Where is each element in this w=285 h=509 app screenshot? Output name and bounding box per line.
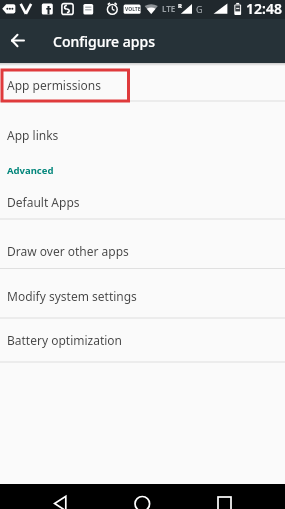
- staticText: Draw over other apps: [7, 243, 129, 259]
- button[interactable]: [205, 486, 245, 509]
- button[interactable]: Modify system settings: [0, 269, 285, 318]
- staticText: App links: [7, 127, 59, 143]
- button[interactable]: [122, 486, 162, 509]
- staticText: Modify system settings: [7, 288, 137, 304]
- staticText: G: [196, 3, 203, 15]
- staticText: LTE: [162, 3, 176, 14]
- staticText: Advanced: [7, 164, 54, 177]
- staticText: R: [178, 2, 182, 10]
- staticText: Default Apps: [7, 194, 80, 210]
- staticText: Configure apps: [53, 32, 155, 51]
- button[interactable]: Battery optimization: [0, 319, 285, 363]
- button[interactable]: App links: [0, 102, 285, 152]
- staticText: Battery optimization: [7, 332, 123, 348]
- button[interactable]: [40, 486, 80, 509]
- button[interactable]: App permissions: [0, 63, 285, 101]
- button[interactable]: Draw over other apps: [0, 220, 285, 269]
- staticText: 12:48: [246, 0, 282, 18]
- button[interactable]: Default Apps: [0, 181, 285, 219]
- staticText: VOLTE: [125, 6, 141, 13]
- staticText: App permissions: [7, 77, 101, 93]
- button[interactable]: [4, 27, 32, 55]
